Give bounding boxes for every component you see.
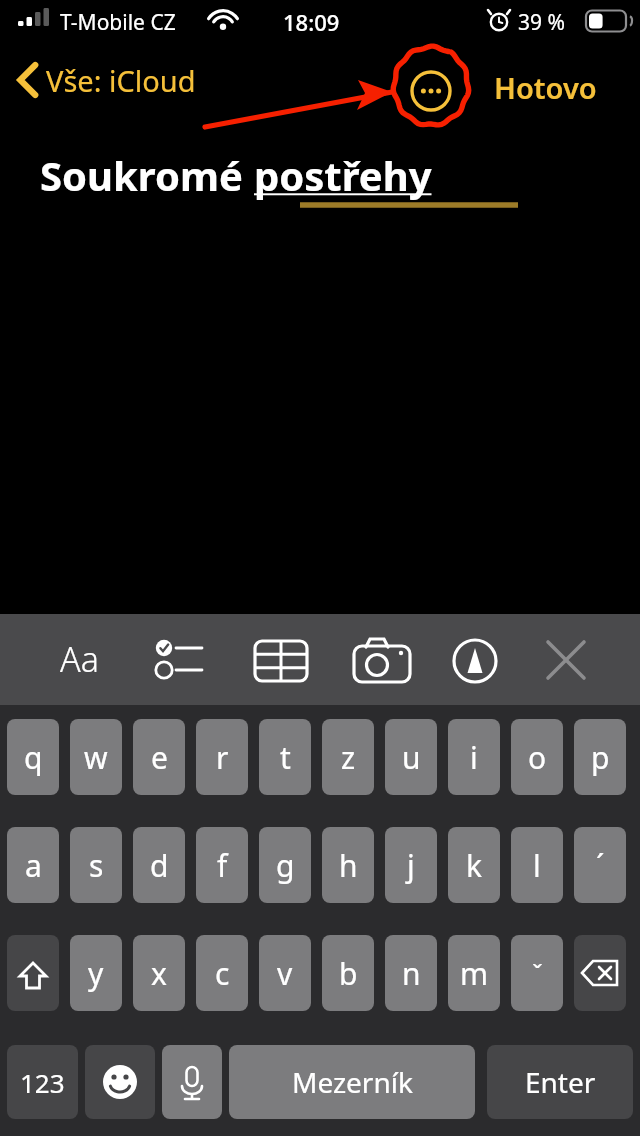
staticText: T-Mobile CZ: [60, 8, 176, 37]
button[interactable]: l: [511, 827, 563, 903]
staticText: 18:09: [283, 7, 340, 37]
staticText: Soukromé: [40, 148, 254, 202]
button[interactable]: v: [259, 935, 311, 1011]
staticText: c: [215, 953, 230, 994]
staticText: postřehy: [254, 148, 432, 202]
button[interactable]: e: [133, 719, 185, 795]
button[interactable]: z: [322, 719, 374, 795]
staticText: 39 %: [518, 8, 565, 37]
button[interactable]: Vše: iCloud: [12, 54, 202, 106]
button[interactable]: d: [133, 827, 185, 903]
staticText: u: [402, 737, 421, 778]
button[interactable]: ˇ: [511, 935, 563, 1011]
staticText: n: [402, 953, 421, 994]
staticText: Enter: [525, 1063, 596, 1101]
button[interactable]: y: [70, 935, 122, 1011]
button[interactable]: r: [196, 719, 248, 795]
button[interactable]: q: [7, 719, 59, 795]
button[interactable]: x: [133, 935, 185, 1011]
staticText: t: [280, 737, 291, 778]
staticText: z: [341, 737, 356, 778]
button[interactable]: Mezerník: [229, 1045, 475, 1119]
button[interactable]: Hotovo: [486, 62, 605, 113]
staticText: s: [89, 845, 104, 886]
button[interactable]: w: [70, 719, 122, 795]
button[interactable]: g: [259, 827, 311, 903]
button[interactable]: h: [322, 827, 374, 903]
button[interactable]: Enter: [487, 1045, 633, 1119]
staticText: q: [24, 737, 43, 778]
button[interactable]: n: [385, 935, 437, 1011]
staticText: p: [591, 737, 610, 778]
button[interactable]: o: [511, 719, 563, 795]
staticText: v: [277, 953, 293, 994]
staticText: h: [339, 845, 358, 886]
button[interactable]: k: [448, 827, 500, 903]
button[interactable]: f: [196, 827, 248, 903]
button[interactable]: Kreslení: [450, 630, 512, 688]
button[interactable]: p: [574, 719, 626, 795]
staticText: e: [151, 737, 168, 778]
button[interactable]: Formát textu: [48, 630, 110, 688]
button[interactable]: i: [448, 719, 500, 795]
button[interactable]: 123: [7, 1045, 78, 1119]
button[interactable]: a: [7, 827, 59, 903]
button[interactable]: Zaškrtávací seznam: [150, 630, 212, 688]
button[interactable]: Více možností: [410, 70, 452, 112]
staticText: g: [276, 845, 295, 886]
staticText: d: [150, 845, 169, 886]
button[interactable]: t: [259, 719, 311, 795]
button[interactable]: Diktování: [162, 1045, 222, 1119]
staticText: m: [460, 953, 489, 994]
staticText: y: [88, 953, 104, 994]
staticText: k: [466, 845, 483, 886]
staticText: r: [216, 737, 229, 778]
staticText: j: [407, 845, 415, 886]
staticText: Aa: [60, 636, 99, 682]
staticText: 123: [20, 1065, 65, 1100]
button[interactable]: ´: [574, 827, 626, 903]
button[interactable]: Zavřít: [538, 630, 600, 688]
staticText: ˇ: [532, 956, 543, 991]
staticText: x: [151, 953, 167, 994]
staticText: f: [217, 845, 228, 886]
staticText: a: [25, 845, 42, 886]
button[interactable]: u: [385, 719, 437, 795]
staticText: l: [533, 845, 541, 886]
button[interactable]: m: [448, 935, 500, 1011]
staticText: w: [84, 737, 108, 778]
staticText: Mezerník: [292, 1063, 413, 1101]
staticText: o: [528, 737, 547, 778]
staticText: ´: [596, 845, 605, 886]
staticText: Hotovo: [494, 68, 597, 107]
button[interactable]: b: [322, 935, 374, 1011]
staticText: Vše: iCloud: [46, 61, 196, 100]
button[interactable]: j: [385, 827, 437, 903]
button[interactable]: Emoji: [85, 1045, 155, 1119]
button[interactable]: c: [196, 935, 248, 1011]
button[interactable]: Shift: [7, 935, 59, 1011]
button[interactable]: Kamera: [350, 630, 412, 688]
staticText: i: [470, 737, 478, 778]
staticText: b: [339, 953, 358, 994]
button[interactable]: s: [70, 827, 122, 903]
button[interactable]: Smazat: [574, 935, 626, 1011]
button[interactable]: Tabulka: [250, 630, 312, 688]
